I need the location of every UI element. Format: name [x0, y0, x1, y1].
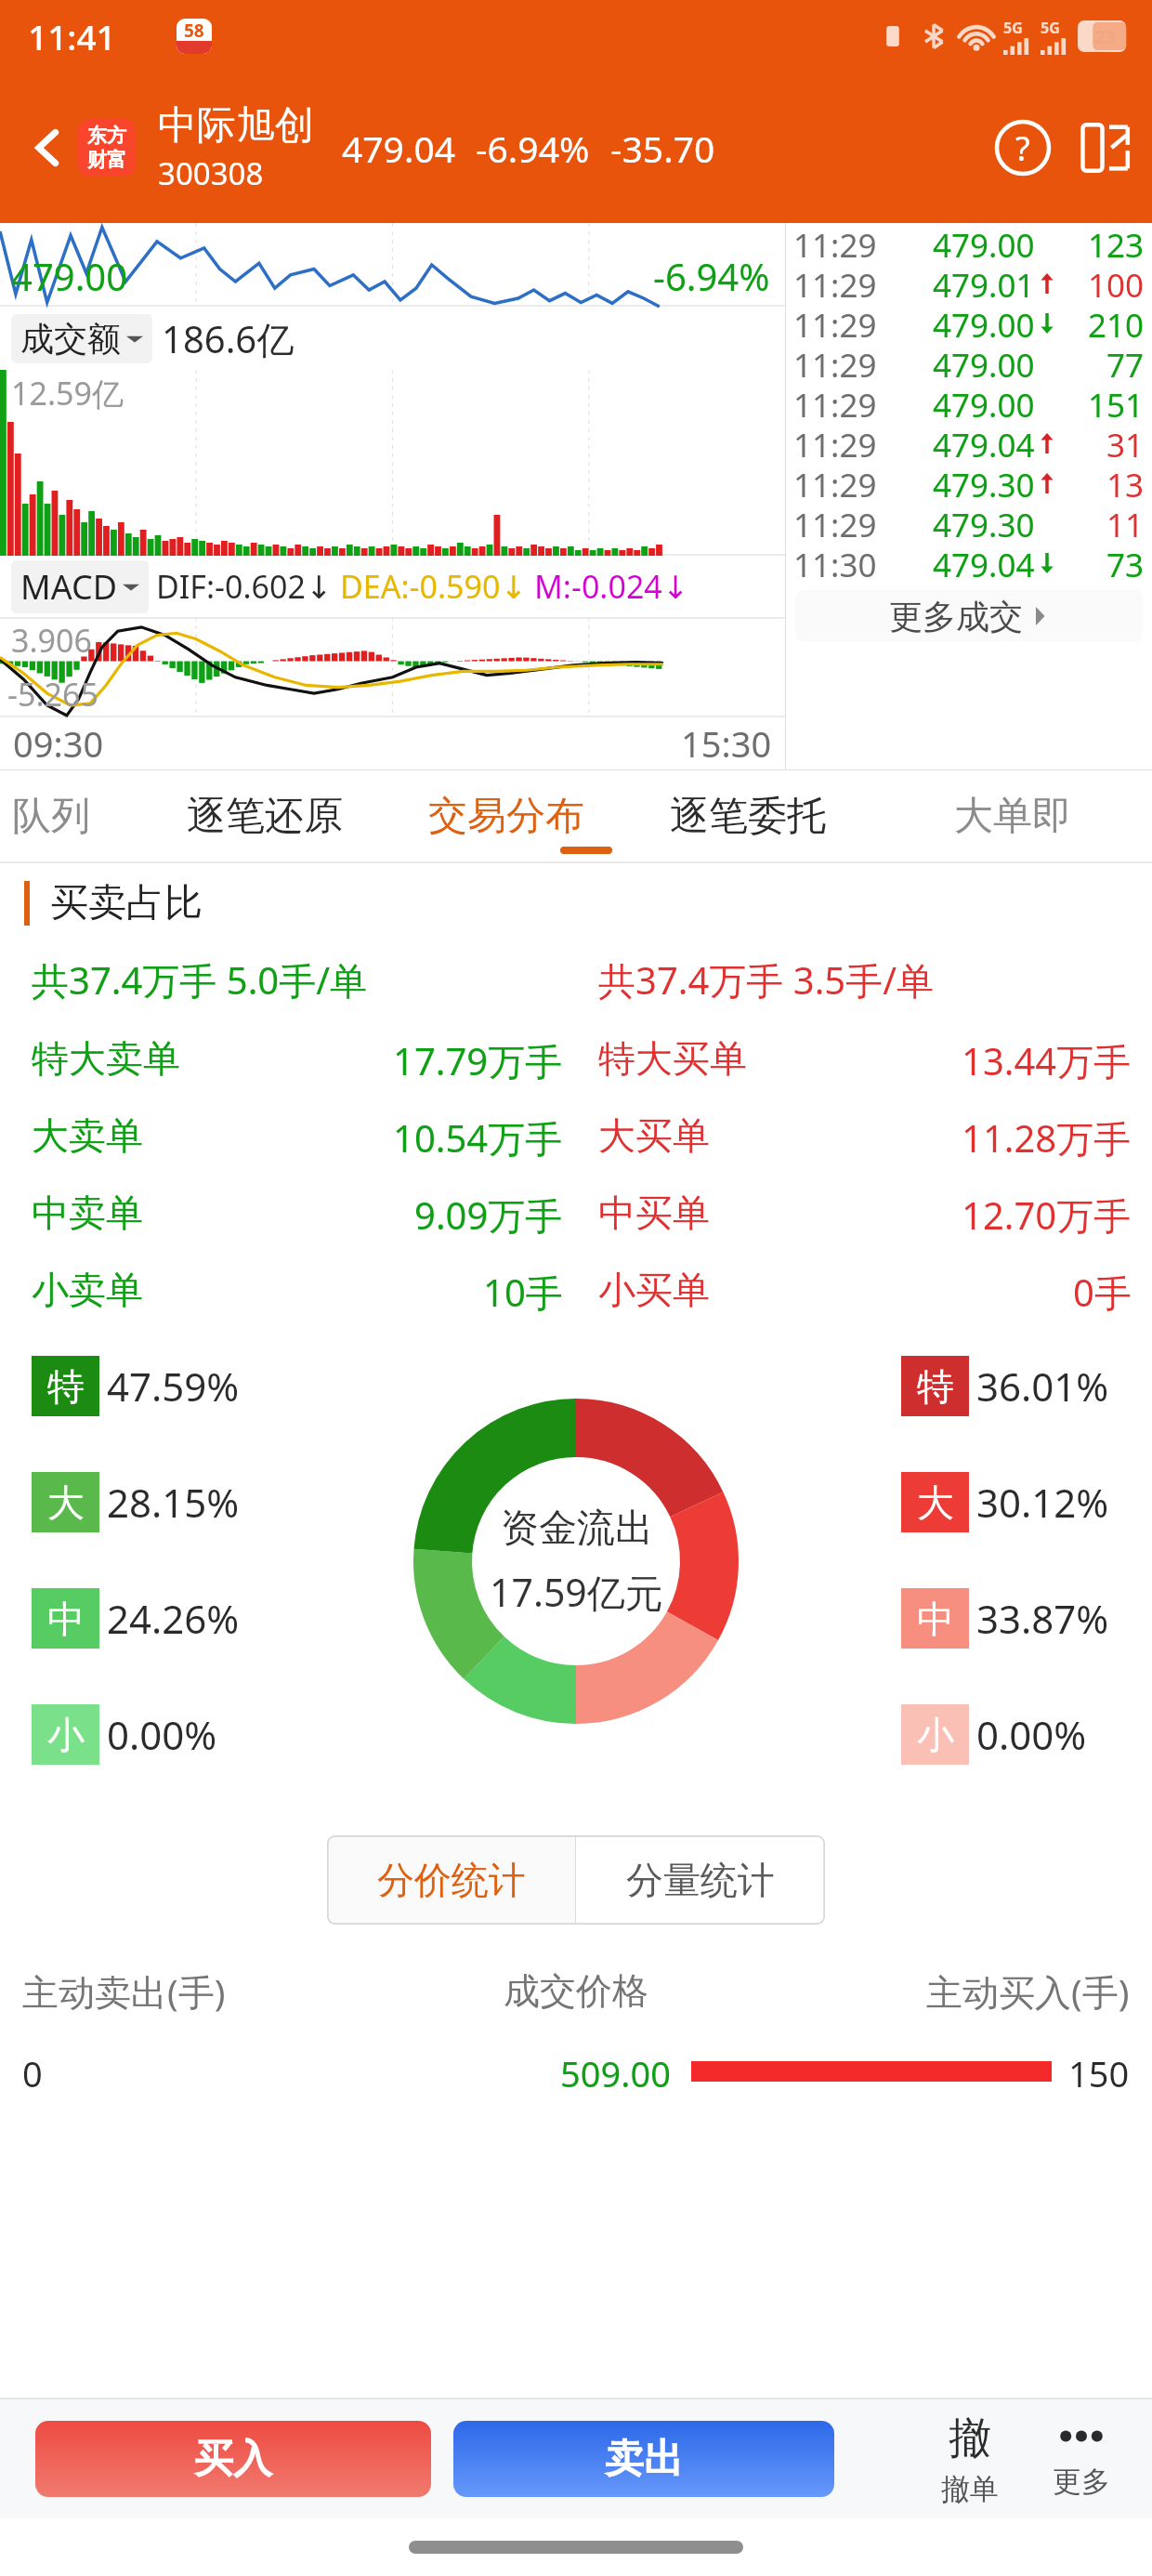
staticText: 大单即: [954, 792, 1071, 841]
staticText: 队列: [12, 792, 90, 841]
staticText: 小: [47, 1712, 85, 1758]
staticText: 中买单: [598, 1189, 710, 1236]
button[interactable]: 更多: [1026, 2419, 1137, 2500]
staticText: 479.00: [933, 383, 1035, 423]
staticText: 3.906: [11, 619, 92, 662]
button[interactable]: 撤: [914, 2412, 1026, 2507]
staticText: 11:41: [28, 13, 116, 59]
staticText: M:-0.024↓: [534, 565, 689, 608]
staticText: 中: [917, 1596, 954, 1642]
staticText: MACD: [20, 564, 117, 610]
button[interactable]: 更多成交: [795, 590, 1143, 642]
staticText: 17.59亿元: [490, 1566, 663, 1618]
staticText: 13.44万手: [962, 1035, 1132, 1086]
button[interactable]: 分量统计: [576, 1835, 825, 1925]
staticText: 479.04: [933, 423, 1035, 463]
staticText: 大: [917, 1479, 954, 1526]
staticText: 中际旭创: [158, 101, 314, 151]
staticText: 资金流出: [501, 1505, 653, 1553]
staticText: 11:29: [793, 383, 877, 423]
staticText: 主动买入(手): [926, 1966, 1130, 2016]
staticText: 17.79万手: [393, 1035, 563, 1086]
button[interactable]: 卖出: [453, 2421, 834, 2497]
staticText: 28.15%: [107, 1476, 240, 1529]
staticText: 财富: [87, 148, 126, 172]
staticText: 31: [1106, 423, 1145, 463]
button[interactable]: Fullscreen: [1076, 119, 1133, 177]
staticText: 10手: [483, 1267, 563, 1318]
staticText: DIF:-0.602↓: [156, 565, 333, 608]
staticText: 12.59亿: [11, 372, 124, 414]
staticText: 58: [184, 19, 204, 43]
staticText: 共37.4万手 5.0手/单: [32, 954, 368, 1005]
button[interactable]: MACD: [20, 564, 139, 610]
staticText: 479.00: [933, 303, 1035, 343]
staticText: 13: [1106, 463, 1145, 503]
staticText: 11:29: [793, 223, 877, 263]
staticText: 11:29: [793, 263, 877, 303]
button[interactable]: Back: [19, 118, 78, 177]
staticText: 479.30: [933, 463, 1035, 503]
button[interactable]: Help: [994, 119, 1052, 177]
button[interactable]: East Money: [78, 119, 136, 177]
staticText: 特大卖单: [32, 1035, 180, 1082]
button[interactable]: 逐笔委托: [622, 770, 873, 861]
staticText: 9.09万手: [414, 1189, 563, 1241]
staticText: 大: [47, 1479, 85, 1526]
staticText: 小: [917, 1712, 954, 1758]
staticText: 特: [47, 1363, 85, 1410]
staticText: 11: [1106, 503, 1145, 543]
staticText: 小买单: [598, 1267, 710, 1313]
staticText: 分量统计: [626, 1857, 775, 1903]
staticText: 24.26%: [107, 1592, 240, 1645]
button[interactable]: 分价统计: [327, 1835, 575, 1925]
staticText: 15:30: [681, 719, 772, 768]
button[interactable]: 买入: [35, 2421, 431, 2497]
staticText: ?: [1015, 125, 1030, 171]
staticText: 509.00: [560, 2049, 671, 2094]
staticText: 逐笔还原: [187, 792, 343, 841]
staticText: 11.28万手: [962, 1112, 1132, 1163]
staticText: 479.04: [342, 124, 455, 173]
staticText: -6.94%: [476, 124, 590, 173]
staticText: 撤单: [941, 2471, 999, 2507]
staticText: 479.00: [933, 223, 1035, 263]
staticText: 小卖单: [32, 1267, 143, 1313]
staticText: 5G: [1041, 18, 1060, 38]
staticText: -6.94%: [653, 251, 770, 301]
staticText: 大卖单: [32, 1112, 143, 1159]
staticText: 77: [1106, 343, 1145, 383]
staticText: 成交价格: [504, 1968, 648, 2014]
staticText: 更多: [1053, 2464, 1110, 2500]
button[interactable]: 逐笔还原: [139, 770, 390, 861]
staticText: 36.01%: [976, 1360, 1109, 1413]
staticText: 123: [1088, 223, 1145, 263]
staticText: 151: [1088, 383, 1145, 423]
staticText: 09:30: [13, 719, 104, 768]
staticText: 479.00: [11, 251, 128, 301]
staticText: 买入: [194, 2435, 272, 2484]
staticText: 33.87%: [976, 1592, 1109, 1645]
staticText: 卖出: [605, 2435, 683, 2484]
staticText: 479.04: [933, 543, 1035, 583]
staticText: 11:29: [793, 503, 877, 543]
staticText: 100: [1088, 263, 1145, 303]
staticText: 210: [1088, 303, 1145, 343]
staticText: 更多成交: [889, 596, 1023, 637]
staticText: 东方: [87, 124, 126, 148]
staticText: 主动卖出(手): [22, 1966, 226, 2016]
staticText: 11:29: [793, 303, 877, 343]
staticText: 0: [22, 2049, 43, 2094]
staticText: 479.30: [933, 503, 1035, 543]
staticText: 12.70万手: [962, 1189, 1132, 1241]
button[interactable]: 交易分布: [390, 770, 622, 861]
button[interactable]: 队列: [0, 770, 139, 861]
button[interactable]: 成交额: [20, 318, 143, 360]
staticText: 特大买单: [598, 1035, 747, 1082]
staticText: 0.00%: [976, 1708, 1087, 1761]
staticText: 479.01: [933, 263, 1035, 303]
button[interactable]: 大单即: [873, 770, 1152, 861]
staticText: 撤: [949, 2412, 991, 2465]
staticText: 买卖占比: [50, 879, 203, 927]
